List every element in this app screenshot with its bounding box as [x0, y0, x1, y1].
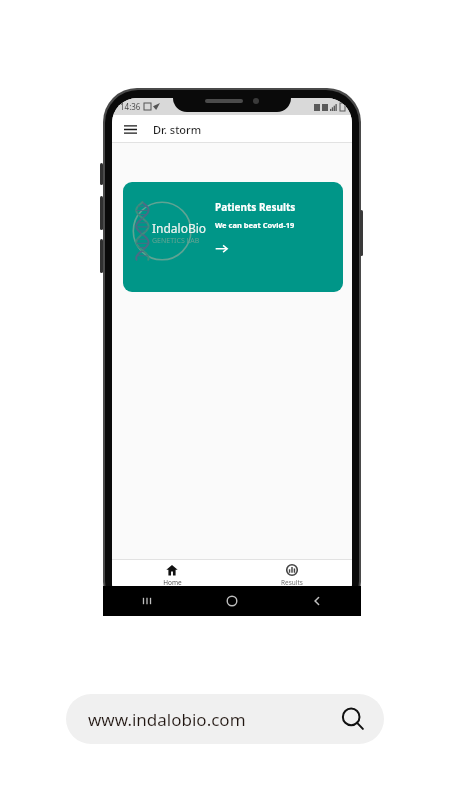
staticText: Home — [163, 578, 182, 587]
button[interactable]: Results — [232, 560, 352, 590]
button[interactable]: Home — [112, 560, 232, 590]
button[interactable]: Menu — [117, 116, 143, 142]
button[interactable]: Open patients results — [215, 240, 235, 256]
staticText: GENETICS LAB — [152, 236, 200, 246]
staticText: Results — [281, 578, 303, 587]
staticText: www.indalobio.com — [88, 708, 340, 731]
staticText: Patients Results — [215, 200, 296, 214]
staticText: We can beat Covid-19 — [215, 220, 295, 230]
button[interactable]: www.indalobio.com — [66, 694, 384, 744]
button[interactable]: IndaloBio — [123, 182, 343, 292]
staticText: IndaloBio — [152, 220, 207, 236]
staticText: 14:36 — [120, 101, 141, 112]
other: Search — [340, 706, 366, 732]
staticText: Dr. storm — [153, 122, 202, 137]
